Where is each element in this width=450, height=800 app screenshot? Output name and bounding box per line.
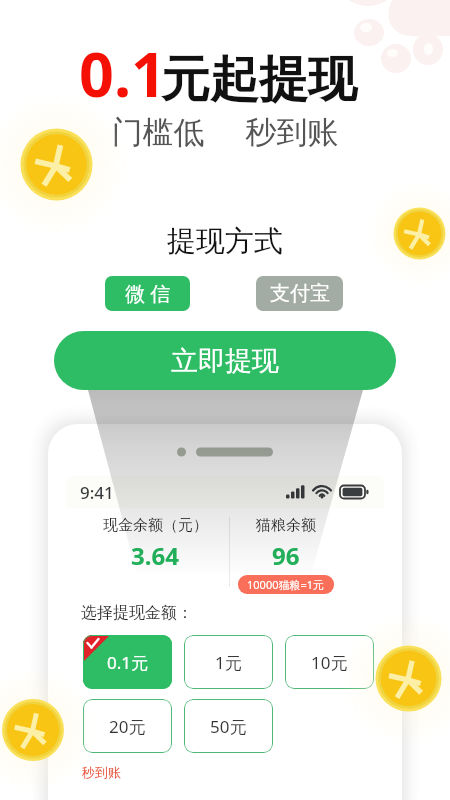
button[interactable]: 50元 <box>184 699 273 753</box>
staticText: 10元 <box>311 651 348 674</box>
staticText: 元起提现 <box>161 49 357 111</box>
button[interactable]: 支付宝 <box>256 276 343 311</box>
staticText: 1元 <box>215 651 242 674</box>
staticText: 现金余额（元） <box>103 516 208 535</box>
staticText: 支付宝 <box>270 281 330 306</box>
staticText: 秒到账 <box>82 764 121 780</box>
button[interactable]: 微 信 <box>105 276 190 311</box>
staticText: 立即提现 <box>171 344 279 378</box>
button[interactable]: 20元 <box>83 699 172 753</box>
staticText: 10000猫粮=1元 <box>247 577 325 592</box>
staticText: 提现方式 <box>0 223 450 260</box>
button[interactable]: 10元 <box>285 635 374 689</box>
button[interactable]: 立即提现 <box>54 331 396 390</box>
staticText: 0.1 <box>79 32 166 115</box>
staticText: 微 信 <box>125 280 171 307</box>
staticText: 门槛低 秒到账 <box>0 110 450 152</box>
staticText: 50元 <box>210 715 247 738</box>
staticText: 96 <box>272 539 300 572</box>
staticText: 3.64 <box>131 539 179 572</box>
staticText: 猫粮余额 <box>256 516 316 535</box>
staticText: 9:41 <box>80 481 114 504</box>
button[interactable]: 0.1元 <box>83 635 172 689</box>
button[interactable]: 1元 <box>184 635 273 689</box>
staticText: 选择提现金额： <box>81 603 193 623</box>
staticText: 20元 <box>109 715 146 738</box>
staticText: 0.1元 <box>107 651 149 674</box>
